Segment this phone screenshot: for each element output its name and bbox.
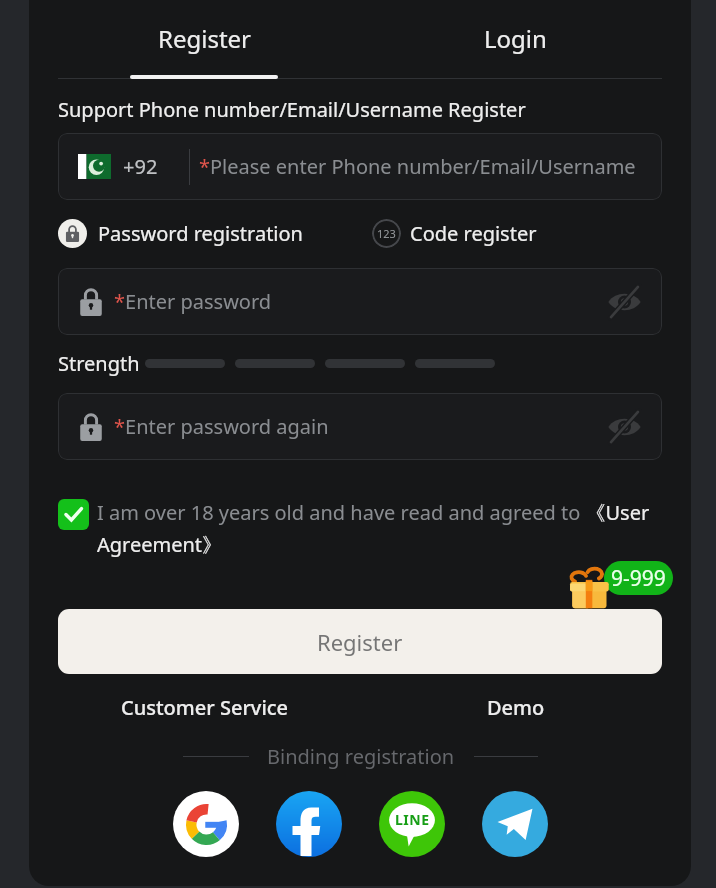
button[interactable]: Sign in with Telegram: [482, 791, 548, 857]
button[interactable]: Register: [50, 0, 360, 76]
staticText: I am over 18 years old and have read and…: [97, 499, 662, 558]
button[interactable]: Sign in with LINE: [379, 791, 445, 857]
staticText: Password registration: [98, 220, 303, 247]
staticText: Code register: [410, 220, 537, 247]
button[interactable]: +92: [58, 133, 662, 200]
button[interactable]: Demo: [446, 692, 586, 722]
button[interactable]: 123: [372, 219, 537, 248]
staticText: Binding registration: [267, 743, 455, 769]
staticText: *Enter password again: [114, 413, 329, 440]
staticText: Register: [317, 627, 403, 657]
button[interactable]: Show password: [600, 278, 648, 326]
staticText: *Please enter Phone number/Email/Usernam…: [199, 153, 636, 180]
button[interactable]: Sign in with Facebook: [276, 791, 342, 857]
staticText: Login: [484, 22, 547, 55]
staticText: Demo: [487, 694, 545, 721]
staticText: 123: [377, 226, 396, 241]
button[interactable]: Password registration: [58, 219, 303, 248]
button[interactable]: Login: [360, 0, 670, 76]
staticText: Customer Service: [121, 694, 289, 721]
button[interactable]: Show password: [600, 403, 648, 451]
staticText: +92: [123, 153, 158, 180]
button[interactable]: *Enter password: [58, 268, 662, 335]
staticText: Support Phone number/Email/Username Regi…: [58, 96, 526, 123]
button[interactable]: *Enter password again: [58, 393, 662, 460]
staticText: LINE: [395, 810, 430, 829]
button[interactable]: Register: [58, 609, 662, 674]
staticText: *Enter password: [114, 288, 272, 315]
staticText: Strength: [58, 350, 140, 377]
button[interactable]: I am over 18 years old and have read and…: [58, 499, 662, 558]
button[interactable]: Sign in with Google: [173, 791, 239, 857]
staticText: 9-999: [611, 564, 666, 593]
staticText: Register: [158, 22, 252, 55]
button[interactable]: Customer Service: [115, 692, 295, 722]
